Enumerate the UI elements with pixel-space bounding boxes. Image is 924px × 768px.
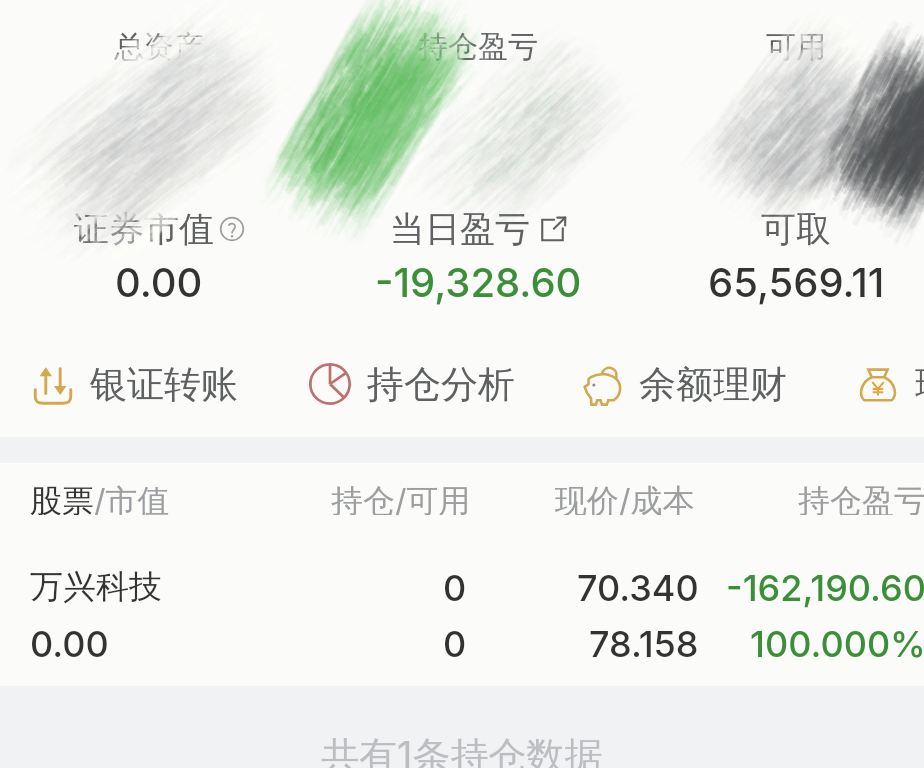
staticText: 证券市值 [74,207,214,251]
button[interactable]: 银证转账 [29,360,238,408]
staticText: 70.340 [577,566,699,610]
button[interactable]: 理 [854,360,924,408]
other: 说明 [219,216,245,242]
staticText: 可用 [766,28,826,66]
staticText: /市值 [94,481,170,515]
other: 理财 [854,360,902,408]
staticText: 持仓分析 [367,361,515,408]
staticText: /可用 [395,481,471,515]
staticText: 0 [443,566,467,610]
button[interactable]: 持仓分析 [306,360,515,408]
staticText: 持仓盈亏 [798,481,924,515]
staticText: 可取 [761,207,831,251]
staticText: 共有1条持仓数据 [321,732,603,768]
staticText: 0 [443,622,467,666]
staticText: 78.158 [589,622,699,666]
other: 持仓分析 [306,360,354,408]
other: 打开当日盈亏 [539,216,566,243]
staticText: -162,190.60 [726,566,924,610]
staticText: -19,328.60 [375,258,582,306]
staticText: 0.00 [115,258,203,306]
staticText: 股票 [30,481,94,515]
staticText: 持仓盈亏 [418,28,538,66]
staticText: 万兴科技 [30,566,162,608]
staticText: 现价 [555,481,619,515]
staticText: 当日盈亏 [390,207,530,251]
staticText: 0.00 [30,622,109,666]
staticText: 总资产 [114,28,204,66]
staticText: /成本 [619,481,695,515]
staticText: 65,569.11 [708,258,885,306]
staticText: 100.000% [750,622,924,666]
other: 银证转账 [29,360,77,408]
staticText: 理 [915,361,924,408]
staticText: 银证转账 [90,361,238,408]
staticText: 持仓 [331,481,395,515]
button[interactable]: 余额理财 [578,360,787,408]
other: 余额理财 [578,360,626,408]
staticText: 余额理财 [639,361,787,408]
